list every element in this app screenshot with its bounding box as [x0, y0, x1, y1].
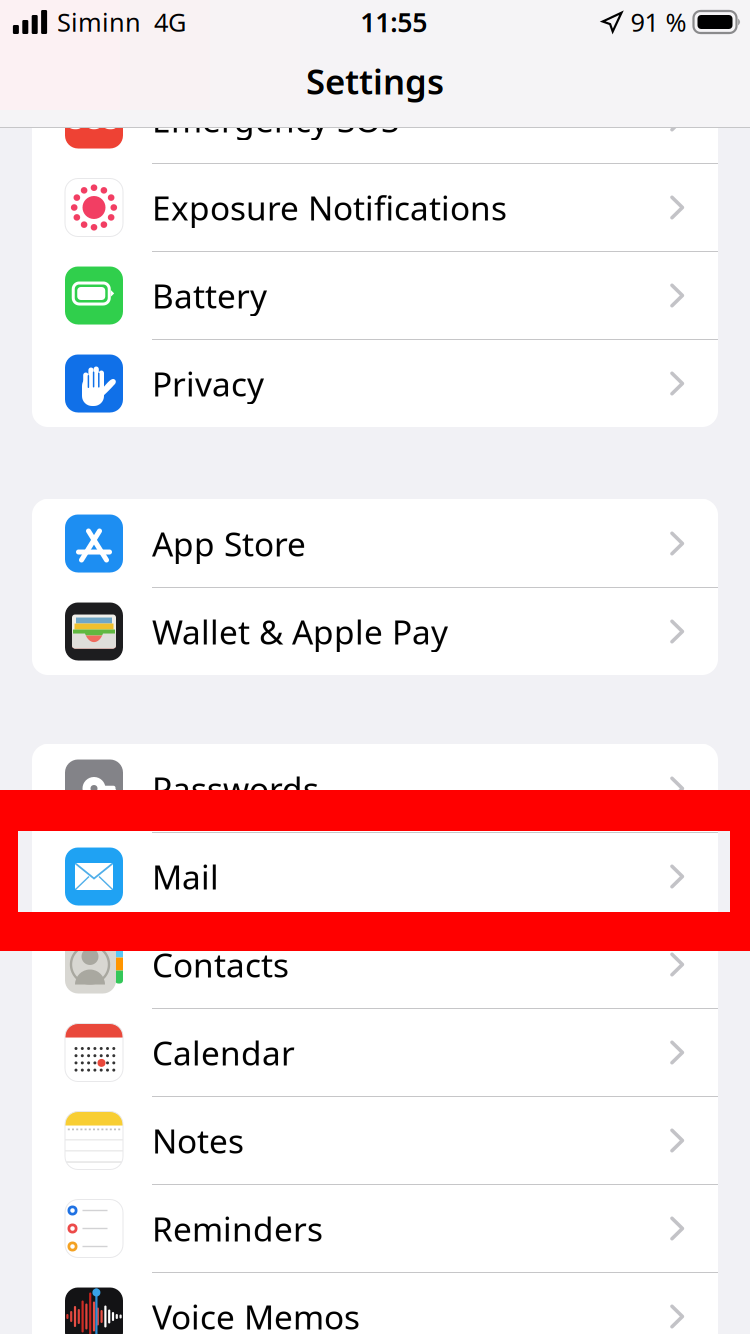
button[interactable]: Wallet & Apple Pay	[32, 587, 718, 675]
button[interactable]: Exposure Notifications	[32, 163, 718, 251]
staticText: Settings	[306, 58, 444, 104]
staticText: Privacy	[152, 361, 264, 406]
staticText: Notes	[152, 1118, 244, 1163]
staticText: 11:55	[360, 4, 427, 40]
button[interactable]: SOS	[32, 75, 718, 163]
button[interactable]: Contacts	[32, 920, 718, 1008]
staticText: Voice Memos	[152, 1294, 360, 1334]
button[interactable]: Reminders	[32, 1184, 718, 1272]
staticText: Mail	[152, 854, 219, 899]
staticText: App Store	[152, 521, 306, 566]
button[interactable]: Battery	[32, 251, 718, 339]
staticText: Calendar	[152, 1030, 295, 1075]
button[interactable]: Voice Memos	[32, 1272, 718, 1334]
staticText: Battery	[152, 273, 267, 318]
staticText: Emergency SOS	[152, 97, 399, 142]
staticText: 4G	[154, 5, 186, 39]
staticText: Wallet & Apple Pay	[152, 609, 448, 654]
button[interactable]: Notes	[32, 1096, 718, 1184]
staticText: 91 %	[630, 5, 686, 39]
staticText: SOS	[69, 103, 119, 136]
staticText: Siminn	[57, 5, 141, 39]
staticText: Reminders	[152, 1206, 323, 1251]
button[interactable]: Calendar	[32, 1008, 718, 1096]
button[interactable]: App Store	[32, 499, 718, 587]
button[interactable]: Mail	[32, 832, 718, 920]
staticText: Contacts	[152, 942, 289, 987]
button[interactable]: Privacy	[32, 339, 718, 427]
staticText: Exposure Notifications	[152, 185, 507, 230]
button[interactable]: Passwords	[32, 744, 718, 832]
staticText: Passwords	[152, 766, 319, 811]
